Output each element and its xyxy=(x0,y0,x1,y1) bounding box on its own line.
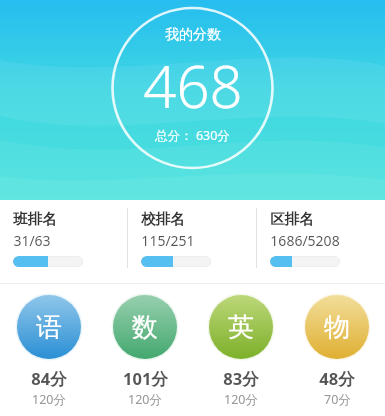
staticText: 语 xyxy=(36,311,62,344)
button[interactable]: 语 xyxy=(0,294,97,416)
button[interactable]: 英 xyxy=(193,294,289,416)
staticText: 校排名 xyxy=(141,210,185,228)
staticText: 1686/5208 xyxy=(270,231,340,250)
staticText: 120分 xyxy=(128,391,162,408)
staticText: 70分 xyxy=(324,391,351,408)
staticText: 31/63 xyxy=(13,231,51,250)
staticText: 总分： 630分 xyxy=(155,127,230,144)
staticText: 英 xyxy=(228,311,254,344)
button[interactable]: 数 xyxy=(97,294,193,416)
staticText: 101分 xyxy=(123,367,168,390)
staticText: 120分 xyxy=(224,391,258,408)
staticText: 班排名 xyxy=(13,210,57,228)
staticText: 48分 xyxy=(319,367,355,390)
button[interactable]: 班排名 xyxy=(0,200,127,283)
staticText: 我的分数 xyxy=(165,26,221,44)
staticText: 120分 xyxy=(32,391,66,408)
staticText: 83分 xyxy=(223,367,259,390)
staticText: 物 xyxy=(324,311,350,344)
staticText: 84分 xyxy=(31,367,67,390)
button[interactable]: 区排名 xyxy=(257,200,385,283)
button[interactable]: 校排名 xyxy=(128,200,256,283)
staticText: 115/251 xyxy=(141,231,195,250)
staticText: 468 xyxy=(143,46,243,125)
staticText: 数 xyxy=(132,311,158,344)
staticText: 区排名 xyxy=(270,210,314,228)
button[interactable]: 物 xyxy=(289,294,385,416)
